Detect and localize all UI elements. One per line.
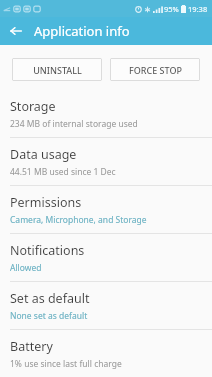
button[interactable]: Back xyxy=(6,21,26,41)
staticText: Set as default xyxy=(10,290,90,307)
staticText: 95% xyxy=(164,4,179,14)
staticText: Permissions xyxy=(10,194,82,211)
staticText: 234 MB of internal storage used xyxy=(10,118,138,130)
staticText: Application info xyxy=(34,22,130,40)
button[interactable]: Notifications xyxy=(0,234,212,281)
button[interactable]: Data usage xyxy=(0,138,212,185)
button[interactable]: Set as default xyxy=(0,282,212,329)
staticText: Storage xyxy=(10,98,56,115)
staticText: Camera, Microphone, and Storage xyxy=(10,214,147,226)
button[interactable]: Battery xyxy=(0,330,212,377)
staticText: 1% use since last full charge xyxy=(10,358,122,370)
staticText: UNINSTALL xyxy=(33,64,82,76)
staticText: FORCE STOP xyxy=(129,64,182,76)
staticText: None set as default xyxy=(10,310,88,322)
staticText: 44.51 MB used since 1 Dec xyxy=(10,166,116,178)
button[interactable]: UNINSTALL xyxy=(12,58,102,81)
staticText: Allowed xyxy=(10,262,42,274)
staticText: Battery xyxy=(10,338,53,355)
staticText: Notifications xyxy=(10,242,85,259)
button[interactable]: FORCE STOP xyxy=(110,58,200,81)
button[interactable]: Permissions xyxy=(0,186,212,233)
button[interactable]: Storage xyxy=(0,90,212,137)
staticText: Data usage xyxy=(10,146,77,163)
staticText: 19:38 xyxy=(188,4,208,14)
